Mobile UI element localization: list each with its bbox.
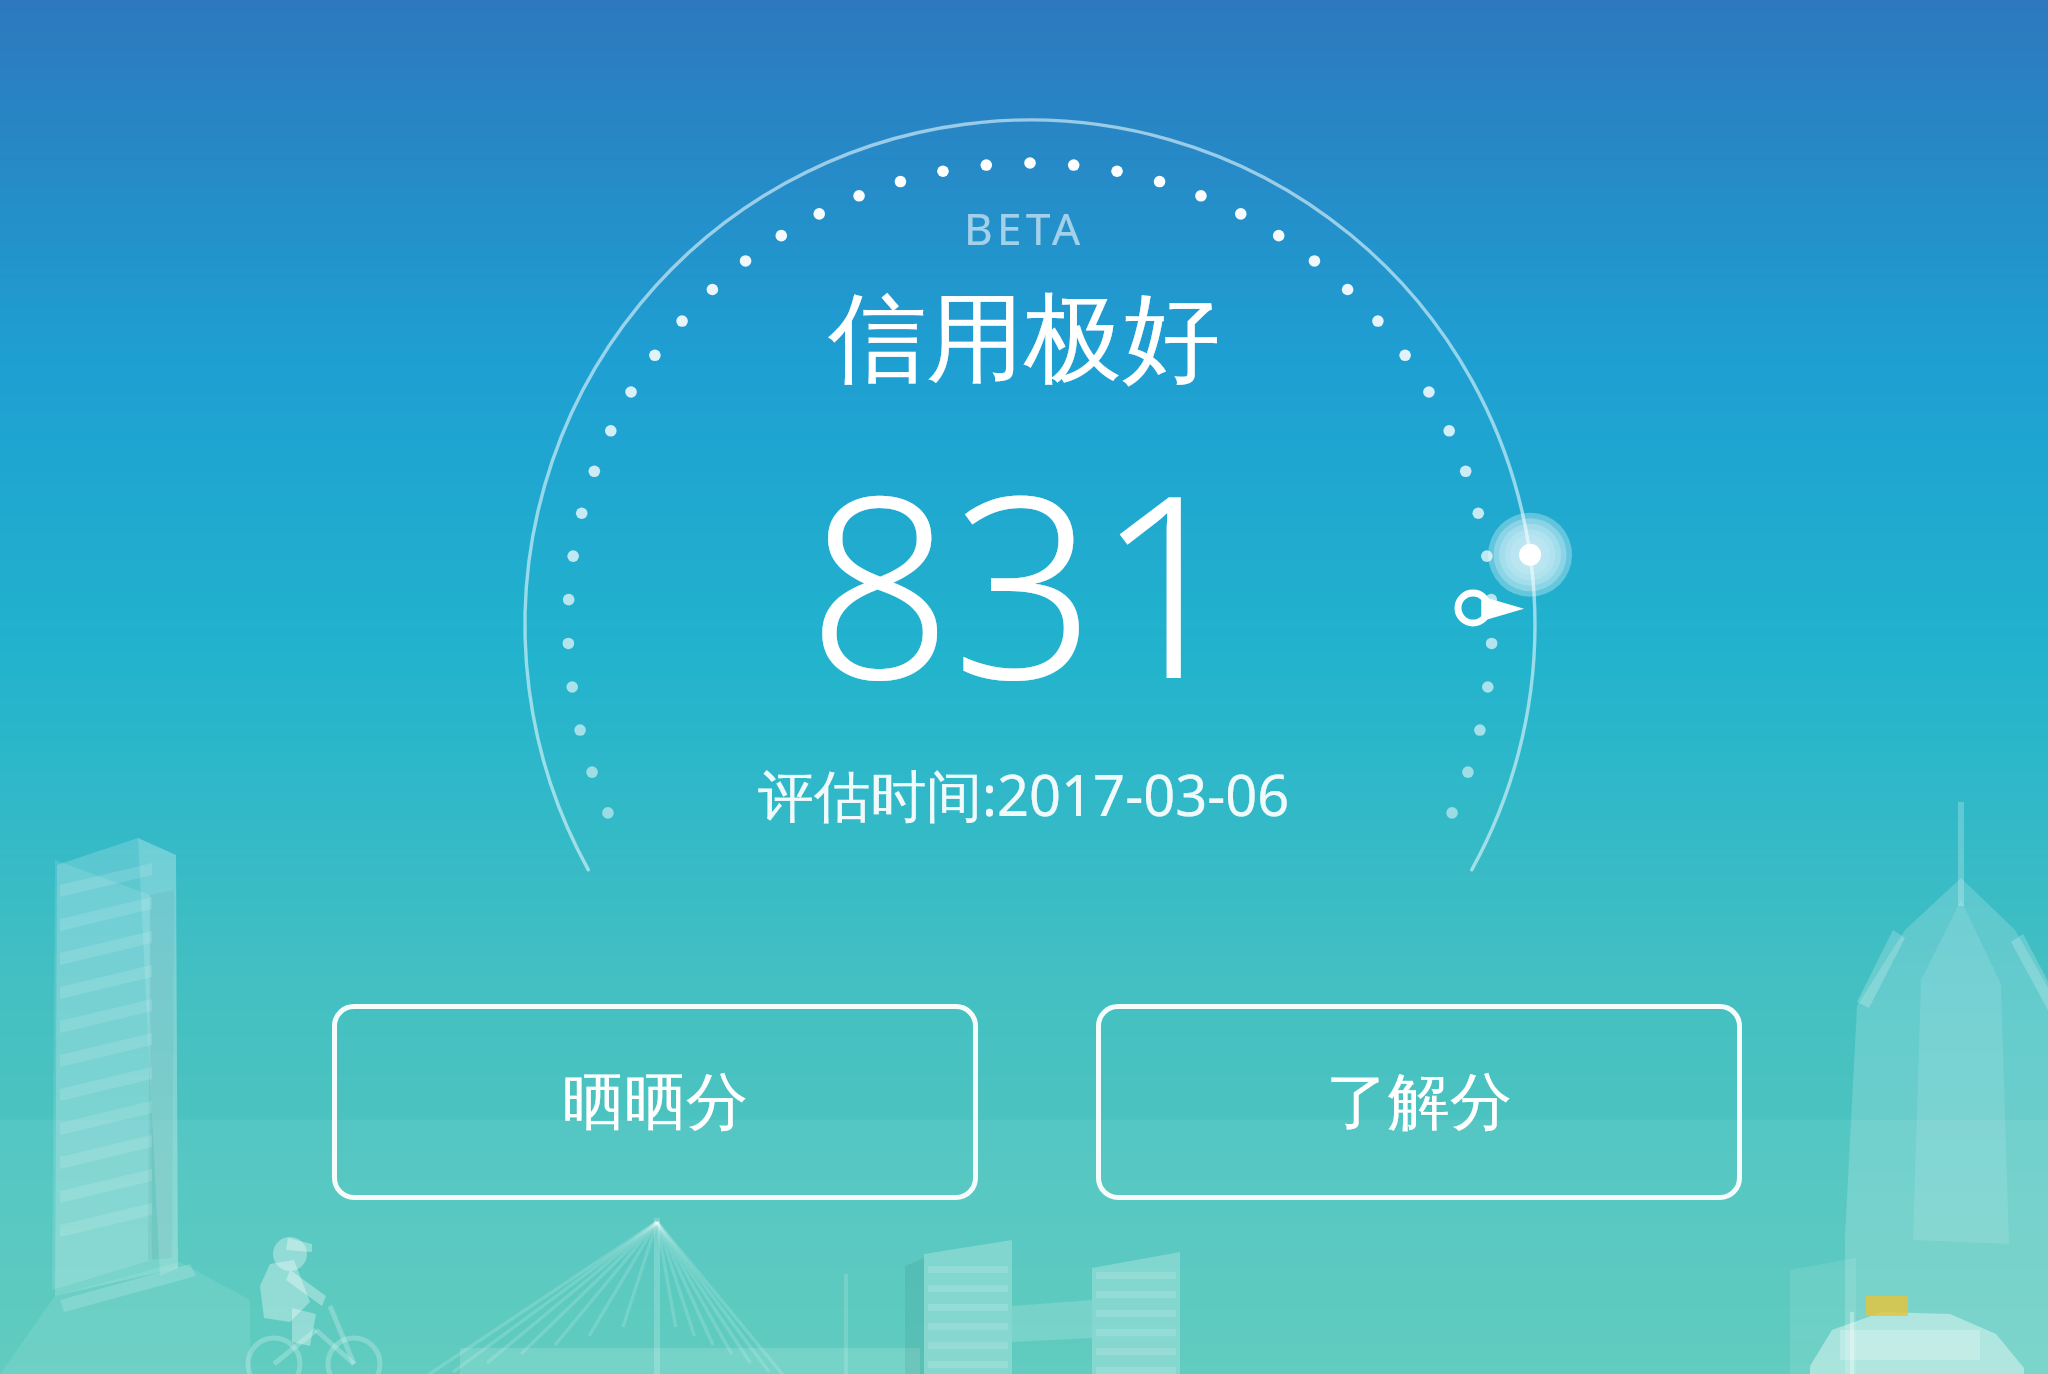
button[interactable]: 晒晒分: [332, 1004, 978, 1200]
staticText: 评估时间:2017-03-06: [758, 756, 1290, 832]
button[interactable]: 了解分: [1096, 1004, 1742, 1200]
staticText: 信用极好: [828, 278, 1220, 401]
staticText: 晒晒分: [562, 1063, 748, 1141]
staticText: 了解分: [1326, 1063, 1512, 1141]
staticText: 831: [808, 409, 1240, 752]
staticText: BETA: [964, 198, 1085, 258]
